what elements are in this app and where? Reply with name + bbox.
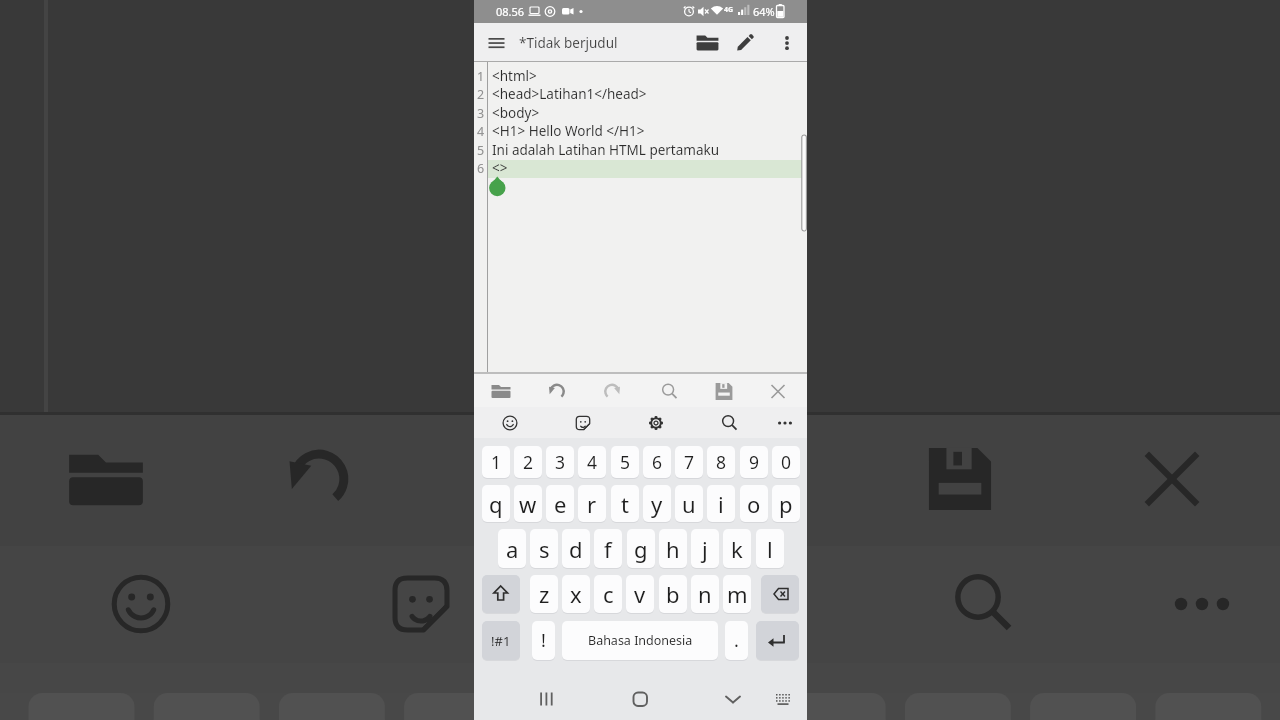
button[interactable]: i: [707, 485, 735, 522]
button[interactable]: [482, 31, 512, 56]
button[interactable]: [730, 29, 759, 56]
button[interactable]: p: [772, 485, 800, 522]
staticText: v: [634, 579, 646, 609]
button[interactable]: c: [594, 575, 622, 613]
staticText: n: [698, 579, 712, 609]
button[interactable]: f: [594, 529, 622, 568]
staticText: y: [651, 489, 663, 519]
staticText: !: [541, 628, 546, 653]
staticText: 5: [477, 142, 485, 159]
button[interactable]: [708, 376, 740, 405]
staticText: 2: [477, 86, 485, 103]
staticText: <>: [492, 159, 508, 177]
button[interactable]: l: [756, 529, 784, 568]
button[interactable]: [620, 685, 660, 715]
button[interactable]: .: [725, 621, 748, 660]
staticText: q: [489, 489, 503, 519]
button[interactable]: [770, 688, 798, 712]
button[interactable]: [596, 376, 628, 405]
staticText: 2: [523, 450, 534, 474]
staticText: 5: [620, 450, 631, 474]
button[interactable]: x: [562, 575, 590, 613]
button[interactable]: h: [659, 529, 687, 568]
button[interactable]: 1: [482, 446, 510, 478]
button[interactable]: 8: [707, 446, 735, 478]
button[interactable]: s: [530, 529, 558, 568]
button[interactable]: d: [562, 529, 590, 568]
button[interactable]: w: [514, 485, 542, 522]
button[interactable]: [775, 29, 801, 56]
button[interactable]: [770, 408, 800, 437]
button[interactable]: q: [482, 485, 510, 522]
button[interactable]: e: [546, 485, 574, 522]
button[interactable]: n: [691, 575, 719, 613]
staticText: a: [506, 534, 519, 564]
button[interactable]: z: [530, 575, 558, 613]
staticText: u: [682, 489, 696, 519]
button[interactable]: g: [627, 529, 655, 568]
button[interactable]: [641, 408, 671, 437]
staticText: 7: [684, 450, 695, 474]
button[interactable]: [653, 376, 685, 405]
staticText: e: [554, 489, 567, 519]
staticText: 6: [652, 450, 663, 474]
button[interactable]: a: [498, 529, 526, 568]
staticText: <H1> Hello World </H1>: [492, 122, 645, 140]
button[interactable]: [482, 575, 520, 613]
button[interactable]: u: [675, 485, 703, 522]
staticText: r: [587, 489, 597, 519]
button[interactable]: r: [578, 485, 606, 522]
button[interactable]: [762, 376, 794, 405]
staticText: 3: [477, 105, 485, 122]
staticText: w: [519, 489, 537, 519]
staticText: c: [603, 579, 614, 609]
button[interactable]: 6: [643, 446, 671, 478]
button[interactable]: [495, 408, 525, 437]
button[interactable]: j: [691, 529, 719, 568]
button[interactable]: b: [659, 575, 687, 613]
button[interactable]: 5: [611, 446, 639, 478]
button[interactable]: [713, 685, 753, 715]
button[interactable]: y: [643, 485, 671, 522]
button[interactable]: 2: [514, 446, 542, 478]
staticText: 1: [477, 68, 485, 85]
staticText: 4: [587, 450, 598, 474]
button[interactable]: Bahasa Indonesia: [562, 621, 718, 660]
staticText: <body>: [492, 104, 540, 122]
button[interactable]: v: [626, 575, 654, 613]
button[interactable]: 3: [546, 446, 574, 478]
staticText: m: [727, 579, 748, 609]
staticText: d: [569, 534, 583, 564]
button[interactable]: [693, 29, 722, 56]
button[interactable]: 0: [772, 446, 800, 478]
staticText: 9: [749, 450, 760, 474]
staticText: 0: [781, 450, 792, 474]
button[interactable]: [568, 408, 598, 437]
button[interactable]: 4: [578, 446, 606, 478]
button[interactable]: [527, 685, 567, 715]
button[interactable]: m: [723, 575, 751, 613]
staticText: s: [539, 534, 550, 564]
button[interactable]: t: [611, 485, 639, 522]
staticText: 6: [477, 160, 485, 177]
staticText: i: [718, 489, 724, 519]
button[interactable]: k: [723, 529, 751, 568]
button[interactable]: [761, 575, 799, 613]
staticText: 1: [491, 450, 502, 474]
button[interactable]: 7: [675, 446, 703, 478]
button[interactable]: [541, 376, 573, 405]
button[interactable]: !: [532, 621, 555, 660]
staticText: 08.56: [496, 4, 525, 19]
button[interactable]: o: [740, 485, 768, 522]
staticText: Ini adalah Latihan HTML pertamaku: [492, 141, 720, 159]
staticText: <head>Latihan1</head>: [492, 85, 647, 103]
staticText: 8: [716, 450, 727, 474]
staticText: o: [747, 489, 761, 519]
button[interactable]: [485, 376, 517, 405]
button[interactable]: !#1: [482, 621, 520, 660]
button[interactable]: [714, 408, 744, 437]
button[interactable]: [756, 621, 799, 660]
staticText: .: [734, 628, 739, 653]
button[interactable]: 9: [740, 446, 768, 478]
staticText: 64%: [753, 4, 775, 19]
